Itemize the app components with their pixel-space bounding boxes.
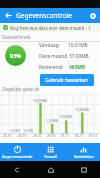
staticText: 23-10 bbox=[18, 134, 27, 138]
staticText: 37,00MB bbox=[69, 53, 89, 60]
staticText: Vandaag: bbox=[39, 42, 61, 49]
staticText: 6,50MB bbox=[60, 114, 73, 119]
staticText: Dataverbruik bbox=[2, 34, 31, 40]
staticText: 20-10 bbox=[3, 134, 12, 138]
staticText: Gegevenscontrole bbox=[2, 154, 33, 159]
staticText: Resterend: bbox=[39, 64, 64, 71]
staticText: Statistieken bbox=[74, 154, 94, 159]
staticText: Nog heel wat data over deze maand - 1 bbox=[10, 25, 91, 31]
staticText: 10,01MB bbox=[68, 42, 88, 49]
staticText: 26-10 bbox=[33, 134, 42, 138]
button[interactable]: Home bbox=[34, 161, 67, 178]
staticText: Gegevenscontrole bbox=[16, 11, 73, 20]
staticText: 01-11 bbox=[61, 134, 70, 138]
button[interactable]: Gebruik bewerken bbox=[40, 74, 94, 86]
button[interactable]: Statistieken bbox=[67, 143, 100, 161]
button[interactable]: Settings bbox=[86, 8, 100, 23]
button[interactable]: Gegevenscontrole bbox=[0, 143, 34, 161]
staticText: Firewall bbox=[44, 154, 57, 159]
staticText: 07-11 bbox=[89, 134, 98, 138]
button[interactable]: Firewall bbox=[34, 143, 67, 161]
staticText: Gebruik bewerken bbox=[45, 77, 89, 84]
staticText: Deze maand bbox=[39, 53, 68, 60]
staticText: 10,00MB bbox=[33, 98, 47, 103]
button[interactable]: Back bbox=[0, 161, 34, 178]
staticText: 93% bbox=[10, 52, 22, 59]
button[interactable]: Back bbox=[0, 8, 16, 23]
staticText: 0,00B bbox=[11, 128, 20, 133]
staticText: 0,00B bbox=[24, 128, 33, 133]
staticText: 29-10 bbox=[47, 134, 56, 138]
staticText: 04-11 bbox=[75, 134, 84, 138]
staticText: 463MB bbox=[69, 64, 85, 71]
staticText: 10,00MB bbox=[75, 107, 89, 112]
staticText: 1,50MB bbox=[46, 118, 59, 123]
button[interactable]: Recents bbox=[67, 161, 100, 178]
staticText: Dagelijks gebruik bbox=[2, 86, 40, 92]
